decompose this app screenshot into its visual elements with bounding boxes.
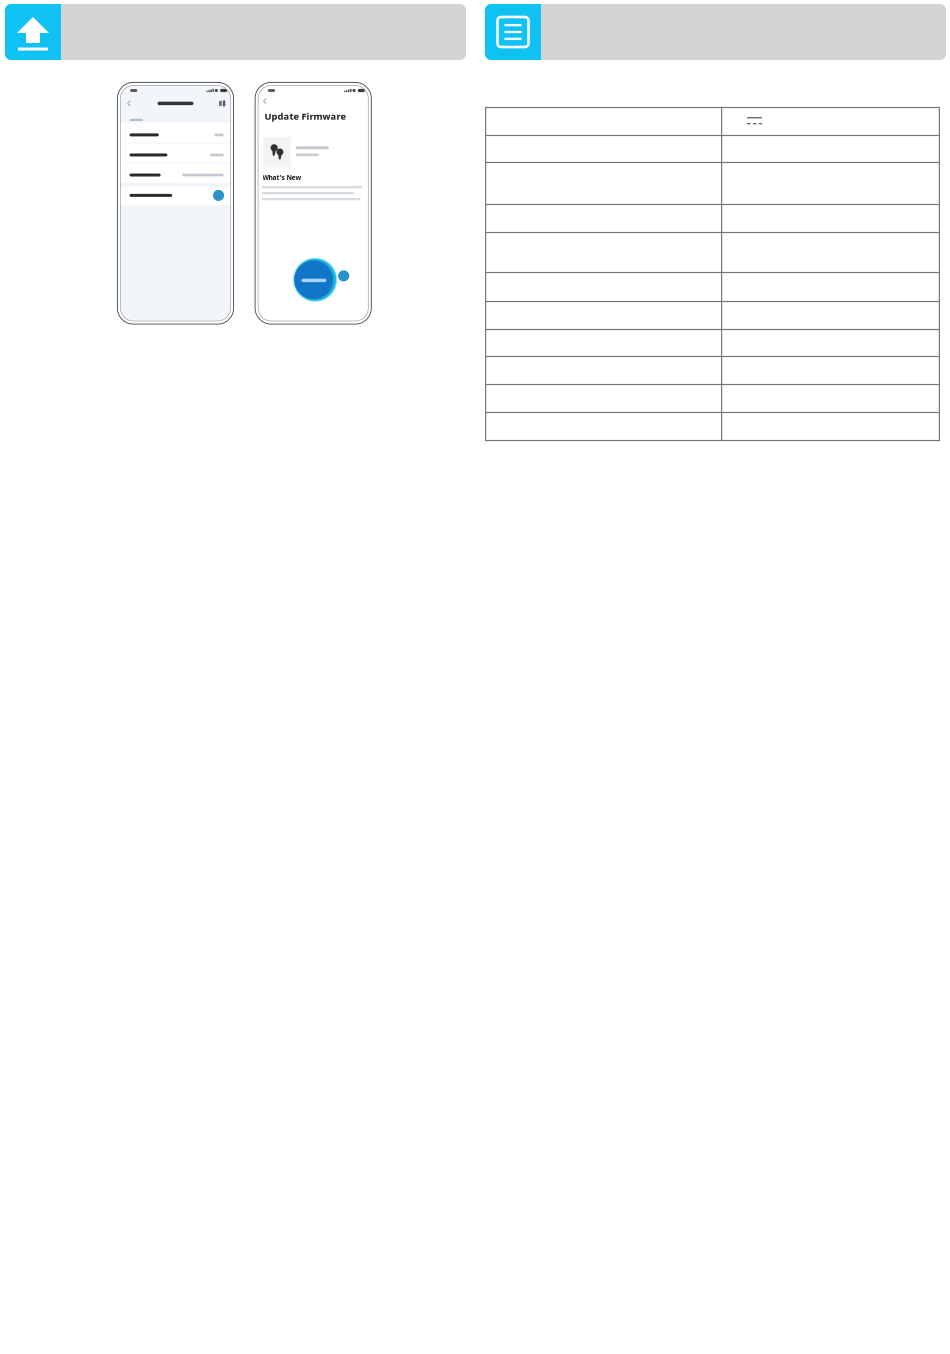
button[interactable]: Back: [258, 95, 276, 106]
button[interactable]: Download: [293, 258, 337, 302]
button[interactable]: [120, 123, 231, 143]
staticText: What's New: [262, 173, 301, 182]
button[interactable]: Update firmware: [5, 4, 466, 60]
button[interactable]: Back: [122, 97, 135, 109]
button[interactable]: Specifications: [485, 4, 946, 60]
button[interactable]: [120, 143, 231, 163]
button[interactable]: [120, 187, 231, 205]
button[interactable]: Device info: [216, 97, 229, 109]
button[interactable]: [120, 163, 231, 183]
staticText: Update Firmware: [264, 110, 346, 122]
